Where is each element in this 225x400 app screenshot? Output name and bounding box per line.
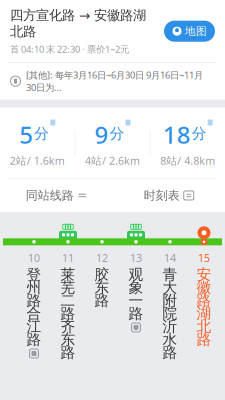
staticText: 15: [198, 251, 210, 265]
staticText: 同站线路: [26, 188, 74, 203]
staticText: 胶: [94, 265, 109, 283]
staticText: 一: [128, 291, 143, 309]
staticText: 二: [60, 291, 75, 309]
staticText: 合: [26, 304, 41, 322]
staticText: 分: [34, 124, 49, 142]
staticText: 登: [26, 265, 41, 283]
staticText: 13: [130, 251, 142, 265]
staticText: 10: [28, 251, 40, 265]
staticText: 首 04:10 末 22:30 · 票价1~2元: [10, 43, 129, 55]
staticText: 江: [26, 317, 41, 335]
button[interactable]: 11: [51, 251, 85, 362]
staticText: 9: [94, 118, 108, 150]
staticText: 2站/ 1.6km: [10, 153, 65, 168]
staticText: 分: [109, 124, 124, 142]
staticText: 11: [62, 251, 74, 265]
staticText: 地图: [185, 25, 207, 38]
staticText: 4站/ 2.6km: [85, 153, 140, 168]
staticText: 18: [163, 118, 191, 150]
staticText: 齐: [60, 317, 75, 335]
staticText: 院: [162, 304, 177, 322]
button[interactable]: 12: [85, 251, 119, 362]
staticText: 路: [26, 330, 41, 348]
staticText: 莱: [60, 265, 75, 283]
staticText: 沂: [162, 317, 177, 335]
staticText: 州: [26, 278, 41, 296]
staticText: 水: [162, 330, 177, 348]
button[interactable]: 10: [17, 251, 51, 362]
staticText: 8站/ 4.8km: [160, 153, 215, 168]
staticText: 路: [128, 304, 143, 322]
staticText: 象: [128, 278, 143, 296]
staticText: 附: [162, 291, 177, 309]
staticText: 路: [196, 291, 211, 309]
staticText: 路: [196, 330, 211, 348]
staticText: 安: [196, 265, 211, 283]
staticText: 四方宣化路 → 安徽路湖北路: [10, 7, 146, 40]
button[interactable]: 地图: [164, 21, 215, 42]
staticText: 东: [60, 330, 75, 348]
staticText: 北: [196, 317, 211, 335]
staticText: 青: [162, 265, 177, 283]
staticText: 东: [94, 278, 109, 296]
staticText: 芜: [60, 278, 75, 296]
staticText: 14: [164, 251, 176, 265]
staticText: 徽: [196, 278, 211, 296]
staticText: 湖: [196, 304, 211, 322]
button[interactable]: 15: [187, 251, 221, 362]
staticText: 12: [96, 251, 108, 265]
staticText: 路: [162, 343, 177, 361]
staticText: 分: [192, 124, 207, 142]
staticText: 路: [26, 291, 41, 309]
staticText: 路: [60, 304, 75, 322]
staticText: 5: [19, 118, 33, 150]
button[interactable]: 同站线路: [0, 179, 112, 212]
staticText: 路: [94, 291, 109, 309]
staticText: 大: [162, 278, 177, 296]
staticText: 时刻表: [144, 188, 180, 203]
staticText: 路: [60, 343, 75, 361]
staticText: [其他]: 每年3月16日~6月30日 9月16日~11月30日为…: [26, 69, 203, 94]
button[interactable]: 14: [153, 251, 187, 362]
staticText: 观: [128, 265, 143, 283]
button[interactable]: 13: [119, 251, 153, 362]
button[interactable]: 时刻表: [112, 179, 225, 212]
